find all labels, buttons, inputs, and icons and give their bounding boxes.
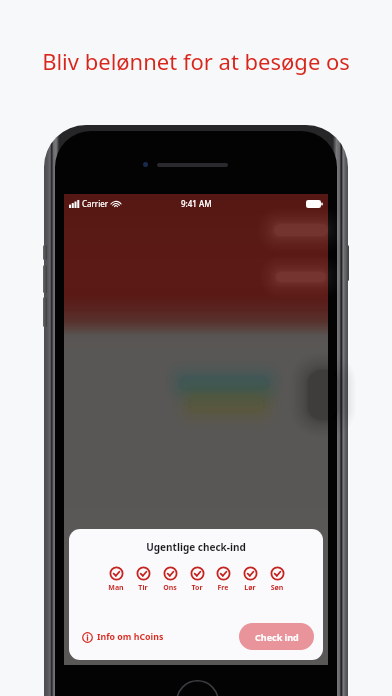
button[interactable]: Tor <box>186 566 208 593</box>
button[interactable]: Check ind <box>239 623 314 650</box>
staticText: Carrier <box>82 198 109 209</box>
button[interactable]: Søn <box>266 566 288 593</box>
staticText: Tor <box>186 583 208 593</box>
staticText: Fre <box>212 583 234 593</box>
button[interactable]: Tir <box>132 566 154 593</box>
staticText: Lør <box>239 583 261 593</box>
button[interactable]: Man <box>105 566 127 593</box>
button[interactable]: Lør <box>239 566 261 593</box>
staticText: Info om hCoins <box>97 631 164 643</box>
button[interactable]: Info om hCoins <box>82 627 164 647</box>
staticText: Check ind <box>255 631 299 643</box>
staticText: 9:41 AM <box>181 198 212 209</box>
button[interactable]: Fre <box>212 566 234 593</box>
staticText: Man <box>105 583 127 593</box>
staticText: Tir <box>132 583 154 593</box>
button[interactable]: Ons <box>159 566 181 593</box>
staticText: Ugentlige check-ind <box>69 540 323 554</box>
staticText: Søn <box>266 583 288 593</box>
staticText: Ons <box>159 583 181 593</box>
staticText: Bliv belønnet for at besøge os <box>0 46 392 76</box>
